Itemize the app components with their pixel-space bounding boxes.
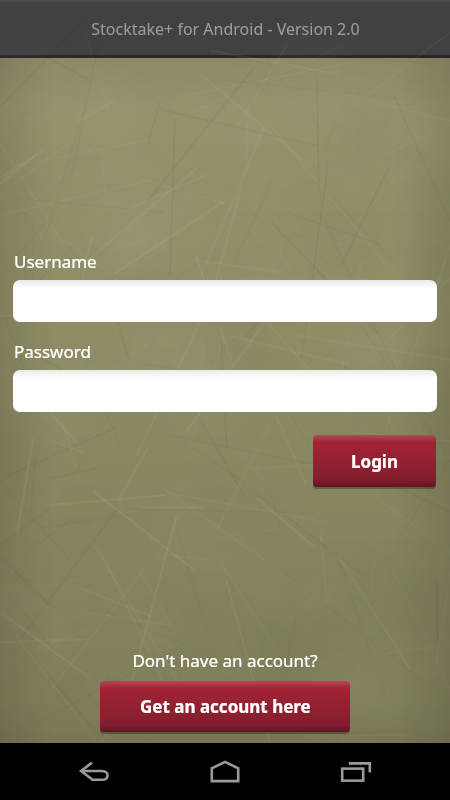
button[interactable]: Login xyxy=(313,435,436,487)
button[interactable]: Back xyxy=(57,743,131,800)
button[interactable] xyxy=(13,370,437,412)
staticText: Password xyxy=(14,340,91,363)
staticText: Stocktake+ for Android - Version 2.0 xyxy=(91,18,360,40)
staticText: Login xyxy=(351,450,399,473)
staticText: Don't have an account? xyxy=(132,649,318,672)
button[interactable] xyxy=(13,280,437,322)
button[interactable]: Recent apps xyxy=(319,743,393,800)
button[interactable]: Get an account here xyxy=(100,681,350,732)
staticText: Username xyxy=(14,250,97,273)
button[interactable]: Home xyxy=(188,743,262,800)
staticText: Get an account here xyxy=(140,695,311,718)
